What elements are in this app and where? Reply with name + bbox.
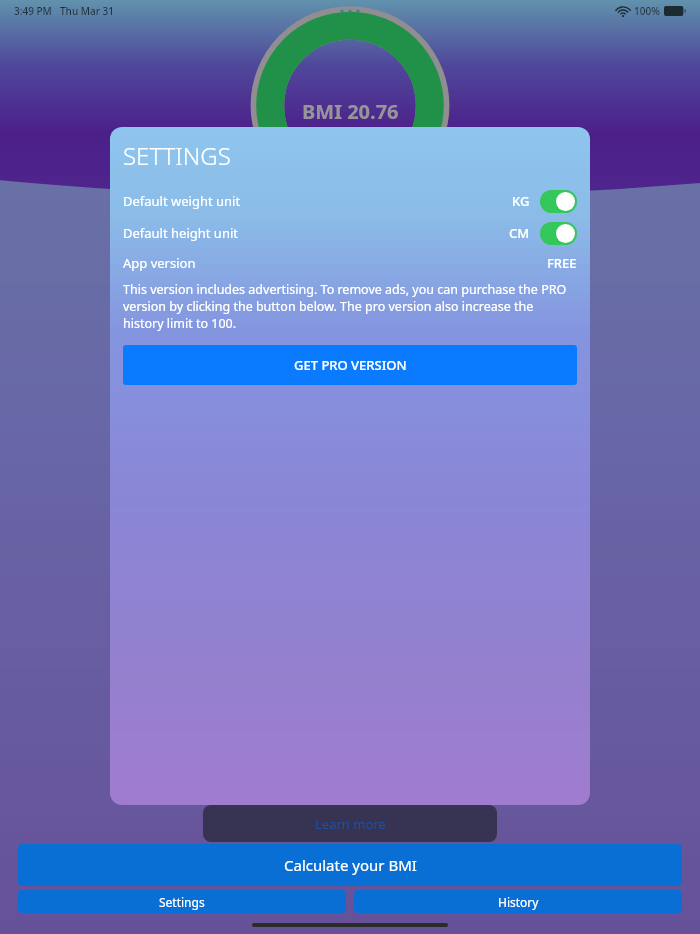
staticText: 3:49 PM: [14, 4, 52, 18]
button[interactable]: Default weight unit: [123, 185, 577, 217]
button[interactable]: Toggle Default weight unit: [540, 190, 577, 213]
staticText: FREE: [547, 254, 577, 272]
staticText: Thu Mar 31: [60, 4, 114, 18]
staticText: Default height unit: [123, 224, 238, 242]
staticText: KG: [512, 192, 530, 210]
staticText: CM: [509, 224, 530, 242]
staticText: This version includes advertising. To re…: [123, 281, 577, 332]
button[interactable]: Settings: [18, 890, 346, 913]
button[interactable]: Toggle Default height unit: [540, 222, 577, 245]
button[interactable]: Learn more: [203, 805, 497, 842]
button[interactable]: Default height unit: [123, 217, 577, 249]
staticText: 100%: [634, 4, 660, 18]
staticText: App version: [123, 254, 196, 272]
staticText: Learn more: [315, 815, 386, 833]
staticText: Calculate your BMI: [284, 855, 417, 875]
staticText: Default weight unit: [123, 192, 241, 210]
button[interactable]: GET PRO VERSION: [123, 345, 577, 385]
staticText: Settings: [159, 894, 205, 910]
staticText: GET PRO VERSION: [294, 356, 407, 374]
staticText: History: [498, 894, 539, 910]
staticText: BMI 20.76: [302, 98, 399, 125]
staticText: SETTINGS: [123, 139, 231, 172]
button[interactable]: History: [354, 890, 682, 913]
button[interactable]: Calculate your BMI: [18, 844, 682, 886]
